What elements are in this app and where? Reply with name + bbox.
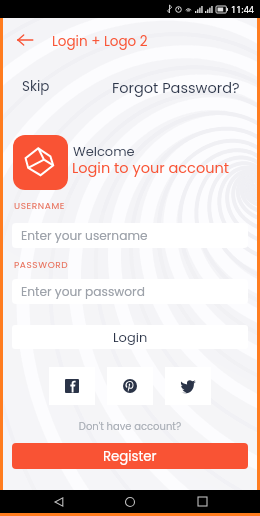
staticText: Login to your account (72, 158, 230, 178)
staticText: Login (113, 328, 148, 346)
button[interactable]: Recent apps (189, 490, 215, 513)
button[interactable]: Home (117, 490, 143, 513)
staticText: Don't have account? (3, 419, 257, 433)
button[interactable]: Enter your username (12, 223, 248, 248)
button[interactable]: Login (12, 325, 248, 349)
button[interactable]: Twitter (165, 367, 211, 405)
button[interactable]: Facebook (49, 367, 95, 405)
button[interactable]: Register (12, 443, 248, 469)
button[interactable]: Skip (19, 74, 53, 99)
staticText: Register (103, 447, 157, 466)
button[interactable]: Back (11, 26, 39, 54)
staticText: Login + Logo 2 (52, 32, 148, 51)
staticText: Welcome (73, 142, 135, 160)
staticText: Enter your password (21, 283, 145, 300)
button[interactable]: Forgot Password? (109, 75, 243, 101)
staticText: PASSWORD (14, 259, 69, 272)
button[interactable]: Pinterest (107, 367, 153, 405)
staticText: Forgot Password? (112, 78, 240, 98)
staticText: USERNAME (14, 200, 66, 213)
staticText: Skip (22, 77, 50, 96)
button[interactable]: Enter your password (12, 279, 248, 304)
button[interactable]: Back (46, 490, 72, 513)
staticText: Enter your username (21, 227, 148, 244)
staticText: 11:44 (231, 3, 255, 15)
